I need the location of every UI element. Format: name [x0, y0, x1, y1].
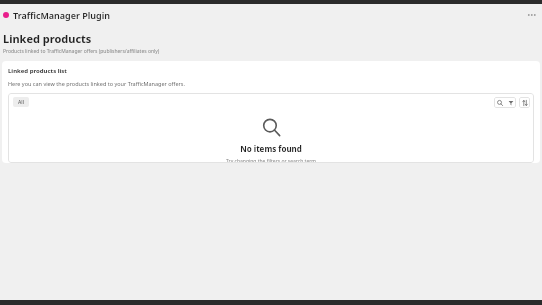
- button[interactable]: TrafficManager Plugin: [3, 9, 110, 21]
- staticText: No items found: [240, 143, 302, 154]
- staticText: Linked products: [3, 31, 92, 46]
- button[interactable]: More options: [526, 8, 540, 22]
- staticText: Try changing the filters or search term: [226, 158, 316, 163]
- staticText: TrafficManager Plugin: [13, 9, 110, 21]
- staticText: Here you can view the products linked to…: [8, 80, 185, 87]
- button[interactable]: Sort: [519, 97, 530, 108]
- staticText: All: [18, 99, 24, 106]
- staticText: Linked products list: [8, 67, 67, 75]
- button[interactable]: All: [13, 97, 29, 107]
- button[interactable]: Search: [494, 97, 505, 108]
- button[interactable]: Filter: [505, 97, 516, 108]
- staticText: Products linked to TrafficManager offers…: [3, 48, 160, 55]
